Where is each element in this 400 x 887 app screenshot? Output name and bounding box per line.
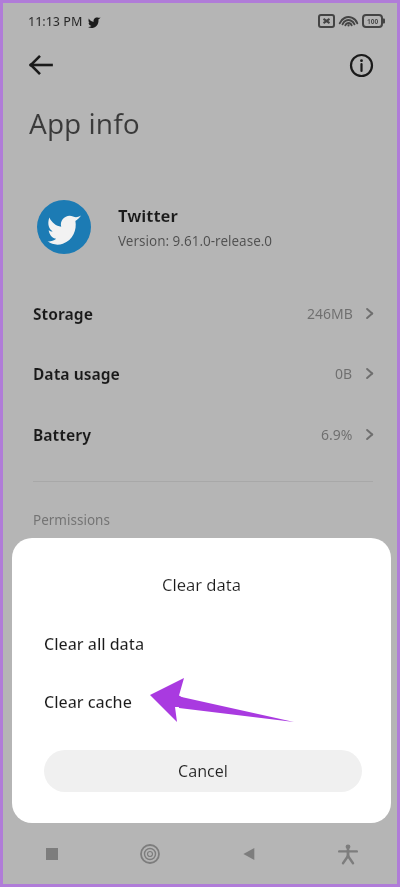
staticText: Data usage <box>33 363 120 384</box>
button[interactable]: Storage <box>3 291 397 335</box>
staticText: 6.9% <box>321 425 353 444</box>
button[interactable]: Back <box>17 41 65 89</box>
button[interactable]: Accessibility menu <box>298 830 397 878</box>
button[interactable]: Clear cache <box>12 679 391 725</box>
staticText: 0B <box>335 364 353 383</box>
button[interactable]: Twitter <box>3 188 397 266</box>
button[interactable]: Recent apps <box>3 830 101 878</box>
staticText: Cancel <box>178 760 228 782</box>
staticText: Version: 9.61.0-release.0 <box>118 232 273 250</box>
staticText: Permissions <box>33 511 110 529</box>
button[interactable]: Cancel <box>44 750 362 792</box>
button[interactable]: Home <box>101 830 199 878</box>
staticText: Battery <box>33 424 92 445</box>
staticText: 246MB <box>307 304 353 323</box>
staticText: 11:13 PM <box>28 13 83 30</box>
button[interactable]: Battery <box>3 412 397 456</box>
staticText: Twitter <box>118 204 178 226</box>
button[interactable]: Back <box>199 830 298 878</box>
staticText: Clear data <box>162 573 241 595</box>
staticText: Clear all data <box>44 633 145 655</box>
button[interactable]: Clear all data <box>12 621 391 667</box>
staticText: App info <box>29 104 140 142</box>
staticText: Clear cache <box>44 691 132 713</box>
button[interactable]: Data usage <box>3 351 397 395</box>
staticText: Storage <box>33 303 93 324</box>
button[interactable]: App info details <box>339 43 383 87</box>
staticText: 100 <box>367 17 379 26</box>
